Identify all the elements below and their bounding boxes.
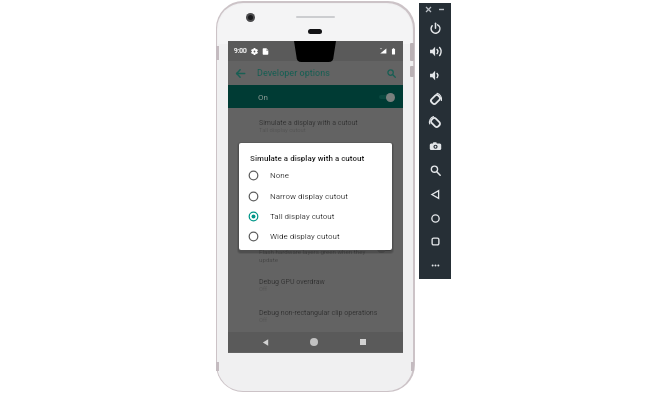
button[interactable]: Zoom <box>425 160 445 180</box>
staticText: On <box>258 93 268 102</box>
button[interactable]: Home <box>307 335 321 349</box>
button[interactable]: Navigate up <box>232 65 248 81</box>
button[interactable]: Rotate left <box>425 89 445 109</box>
button[interactable]: Volume down <box>425 65 445 85</box>
button[interactable]: Search <box>383 65 399 81</box>
staticText: Simulate a display with a cutout <box>259 119 358 127</box>
staticText: Debug non-rectangular clip operations <box>259 309 378 317</box>
staticText: Off <box>259 286 268 293</box>
button[interactable]: Tall display cutout <box>248 207 392 225</box>
button[interactable]: Volume up <box>425 41 445 61</box>
staticText: Simulate a display with a cutout <box>250 154 365 163</box>
button[interactable]: Power <box>425 18 445 38</box>
button[interactable]: Narrow display cutout <box>248 187 392 205</box>
button[interactable]: Wide display cutout <box>248 227 392 245</box>
staticText: Flash hardware layers green when they <box>259 248 366 255</box>
staticText: Wide display cutout <box>270 232 340 241</box>
button[interactable]: On <box>228 85 403 108</box>
button[interactable]: Close <box>423 4 434 15</box>
staticText: None <box>270 171 289 180</box>
staticText: Tall display cutout <box>259 127 306 134</box>
button[interactable]: More <box>425 255 445 275</box>
button[interactable]: Back <box>425 184 445 204</box>
button[interactable]: Take screenshot <box>425 136 445 156</box>
button[interactable]: None <box>248 166 392 184</box>
staticText: Tall display cutout <box>270 212 335 221</box>
staticText: Narrow display cutout <box>270 192 348 201</box>
button[interactable]: Overview <box>425 231 445 251</box>
staticText: Debug GPU overdraw <box>259 278 325 286</box>
button[interactable]: Back <box>258 335 272 349</box>
button[interactable]: Home <box>425 208 445 228</box>
button[interactable]: Minimize <box>436 4 447 15</box>
button[interactable]: Rotate right <box>425 112 445 132</box>
staticText: update <box>259 256 279 263</box>
staticText: Off <box>259 317 268 324</box>
staticText: 9:00 <box>234 47 247 55</box>
staticText: Developer options <box>257 68 330 79</box>
button[interactable]: Recent apps <box>356 335 370 349</box>
